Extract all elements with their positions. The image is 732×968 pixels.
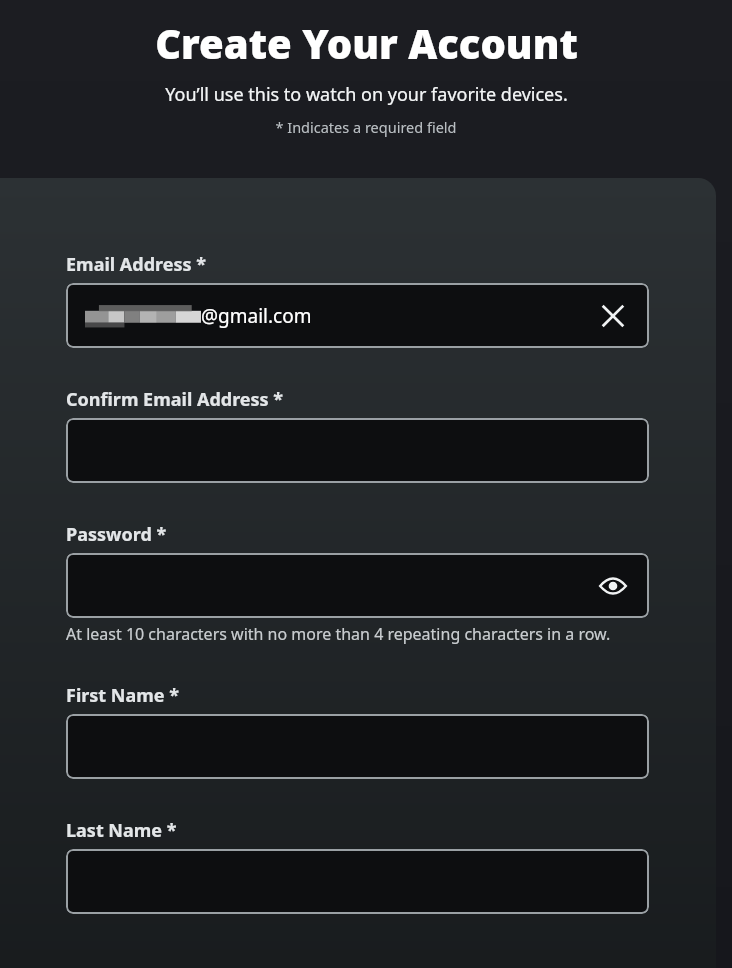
staticText: At least 10 characters with no more than… xyxy=(66,623,611,645)
staticText: @gmail.com xyxy=(201,303,312,329)
staticText: Confirm Email Address * xyxy=(66,387,284,412)
button[interactable]: Clear email address xyxy=(591,294,635,338)
button[interactable]: Show password xyxy=(66,553,649,618)
button[interactable]: Show password xyxy=(591,564,635,608)
button[interactable] xyxy=(66,849,649,914)
staticText: Create Your Account xyxy=(155,16,578,70)
button[interactable] xyxy=(66,418,649,483)
staticText: Email Address * xyxy=(66,252,206,277)
staticText: You’ll use this to watch on your favorit… xyxy=(165,82,568,107)
button[interactable] xyxy=(66,714,649,779)
staticText: * Indicates a required field xyxy=(275,117,457,137)
button[interactable]: @gmail.com xyxy=(66,283,649,348)
staticText: Password * xyxy=(66,522,167,547)
staticText: Last Name * xyxy=(66,818,177,843)
staticText: First Name * xyxy=(66,683,179,708)
